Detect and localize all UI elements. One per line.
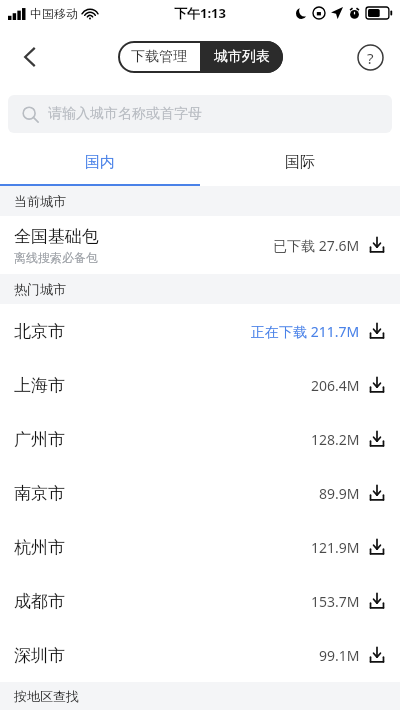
button[interactable]: 北京市 [0, 304, 400, 358]
staticText: 成都市 [14, 591, 311, 612]
button[interactable]: 南京市 [0, 466, 400, 520]
staticText: 离线搜索必备包 [14, 250, 98, 265]
button[interactable]: 成都市 [0, 574, 400, 628]
staticText: 上海市 [14, 375, 311, 396]
button[interactable]: 全国基础包 [0, 216, 400, 274]
staticText: 杭州市 [14, 537, 311, 558]
staticText: 南京市 [14, 483, 319, 504]
staticText: 99.1M [319, 646, 360, 665]
button[interactable]: Help [348, 35, 392, 79]
staticText: ? [367, 48, 374, 68]
staticText: 按地区查找 [14, 688, 79, 704]
button[interactable]: 上海市 [0, 358, 400, 412]
staticText: 热门城市 [14, 281, 66, 297]
staticText: 下午1:13 [174, 4, 226, 22]
staticText: 89.9M [319, 484, 360, 503]
button[interactable]: 深圳市 [0, 628, 400, 682]
staticText: 请输入城市名称或首字母 [48, 105, 202, 123]
staticText: 当前城市 [14, 193, 66, 209]
staticText: 121.9M [311, 538, 360, 557]
button[interactable]: 杭州市 [0, 520, 400, 574]
staticText: 206.4M [311, 376, 360, 395]
button[interactable]: 下载管理 [118, 41, 200, 73]
staticText: 128.2M [311, 430, 360, 449]
staticText: 国际 [285, 153, 315, 172]
button[interactable]: Back [8, 35, 52, 79]
button[interactable]: 请输入城市名称或首字母 [8, 95, 392, 133]
staticText: 中国移动 [30, 6, 78, 21]
button[interactable]: 国内 [0, 140, 200, 184]
staticText: 城市列表 [214, 48, 270, 66]
staticText: 广州市 [14, 429, 311, 450]
staticText: 153.7M [311, 592, 360, 611]
button[interactable]: 城市列表 [200, 41, 283, 73]
staticText: 正在下载 211.7M [251, 322, 360, 341]
staticText: 国内 [85, 153, 115, 172]
staticText: 下载管理 [131, 48, 187, 66]
staticText: 深圳市 [14, 645, 319, 666]
staticText: 北京市 [14, 321, 251, 342]
button[interactable]: 广州市 [0, 412, 400, 466]
staticText: 已下载 27.6M [273, 236, 360, 255]
staticText: 全国基础包 [14, 226, 99, 247]
button[interactable]: 国际 [200, 140, 400, 184]
